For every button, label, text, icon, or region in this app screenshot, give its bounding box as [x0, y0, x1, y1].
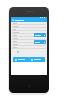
button[interactable]: Navigate up — [12, 19, 14, 21]
button[interactable] — [13, 57, 29, 62]
button[interactable] — [11, 43, 47, 46]
button[interactable] — [11, 28, 47, 31]
button[interactable]: Navigate up — [11, 18, 47, 22]
button[interactable] — [34, 40, 46, 44]
button[interactable] — [11, 46, 47, 49]
button[interactable] — [11, 25, 47, 28]
button[interactable] — [11, 37, 47, 40]
button[interactable] — [11, 31, 47, 34]
button[interactable] — [11, 34, 47, 37]
button[interactable] — [11, 22, 47, 25]
button[interactable] — [11, 40, 47, 43]
button[interactable] — [29, 57, 45, 62]
button[interactable] — [34, 33, 46, 37]
